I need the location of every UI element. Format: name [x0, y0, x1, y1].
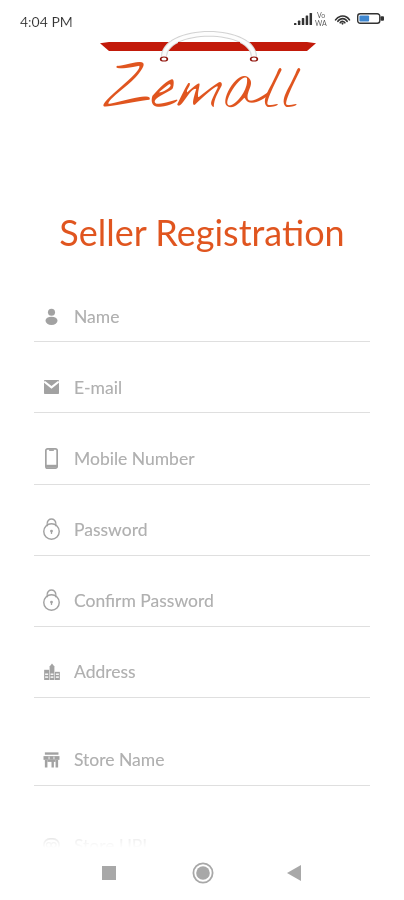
button[interactable]: Home [181, 851, 225, 895]
staticText: Seller Registration [0, 210, 404, 253]
staticText: 4:04 PM [20, 13, 73, 30]
staticText: E-mail [74, 377, 123, 398]
button[interactable]: Store UPI [0, 819, 404, 872]
button[interactable]: Address [0, 645, 404, 698]
staticText: Confirm Password [74, 590, 214, 611]
staticText: Name [74, 306, 120, 327]
button[interactable]: Back [272, 851, 316, 895]
staticText: WA [315, 19, 327, 27]
button[interactable]: Mobile Number [0, 432, 404, 485]
staticText: Mobile Number [74, 448, 195, 469]
staticText: Address [74, 661, 136, 682]
staticText: Store Name [74, 749, 165, 770]
staticText: Password [74, 519, 148, 540]
button[interactable]: Password [0, 503, 404, 556]
button[interactable]: Confirm Password [0, 574, 404, 627]
button[interactable]: Store Name [0, 733, 404, 786]
button[interactable]: E-mail [0, 361, 404, 413]
button[interactable]: Recents [87, 851, 131, 895]
staticText: Vo [317, 11, 326, 19]
button[interactable]: Name [0, 290, 404, 342]
staticText: Zemall [0, 52, 404, 131]
